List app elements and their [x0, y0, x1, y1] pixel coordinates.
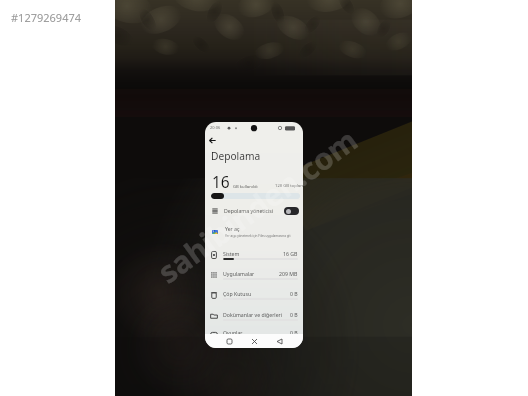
staticText: Yer aç: [225, 225, 240, 232]
staticText: 0 B: [290, 329, 298, 336]
staticText: 209 MB: [279, 270, 298, 277]
button[interactable]: Depolama yöneticisi: [205, 202, 303, 219]
staticText: sahibinden.com: [149, 119, 364, 290]
button[interactable]: Back: [273, 335, 285, 347]
button[interactable]: Çöp Kutusu: [205, 288, 303, 308]
staticText: 16: [212, 171, 230, 192]
staticText: Depolama: [211, 149, 261, 163]
button[interactable]: Yer aç: [205, 221, 303, 242]
staticText: 16 GB: [283, 250, 298, 257]
staticText: 20:06: [210, 125, 221, 130]
staticText: Sistem: [223, 250, 240, 257]
staticText: 128 GB toplam: [275, 183, 303, 189]
button[interactable]: Recent apps: [248, 335, 260, 347]
button[interactable]: Home: [223, 335, 235, 347]
button[interactable]: Oyunlar: [205, 327, 303, 347]
staticText: Uygulamalar: [223, 270, 255, 277]
staticText: Dokümanlar ve diğerleri: [223, 311, 283, 318]
button[interactable]: Uygulamalar: [205, 268, 303, 288]
staticText: Oyunlar: [223, 329, 243, 336]
button[interactable]: Back: [205, 133, 220, 148]
staticText: 0 B: [290, 311, 298, 318]
staticText: Çöp Kutusu: [223, 290, 252, 297]
staticText: #1279269474: [11, 10, 82, 25]
button[interactable]: [284, 207, 299, 215]
staticText: 0 B: [290, 290, 298, 297]
staticText: GB kullanıldı: [233, 184, 258, 190]
button[interactable]: Dokümanlar ve diğerleri: [205, 309, 303, 329]
staticText: Depolama yöneticisi: [224, 207, 274, 214]
staticText: Yer açıp yönetmek için Files uygulamasın…: [225, 234, 291, 238]
button[interactable]: Sistem: [205, 248, 303, 268]
